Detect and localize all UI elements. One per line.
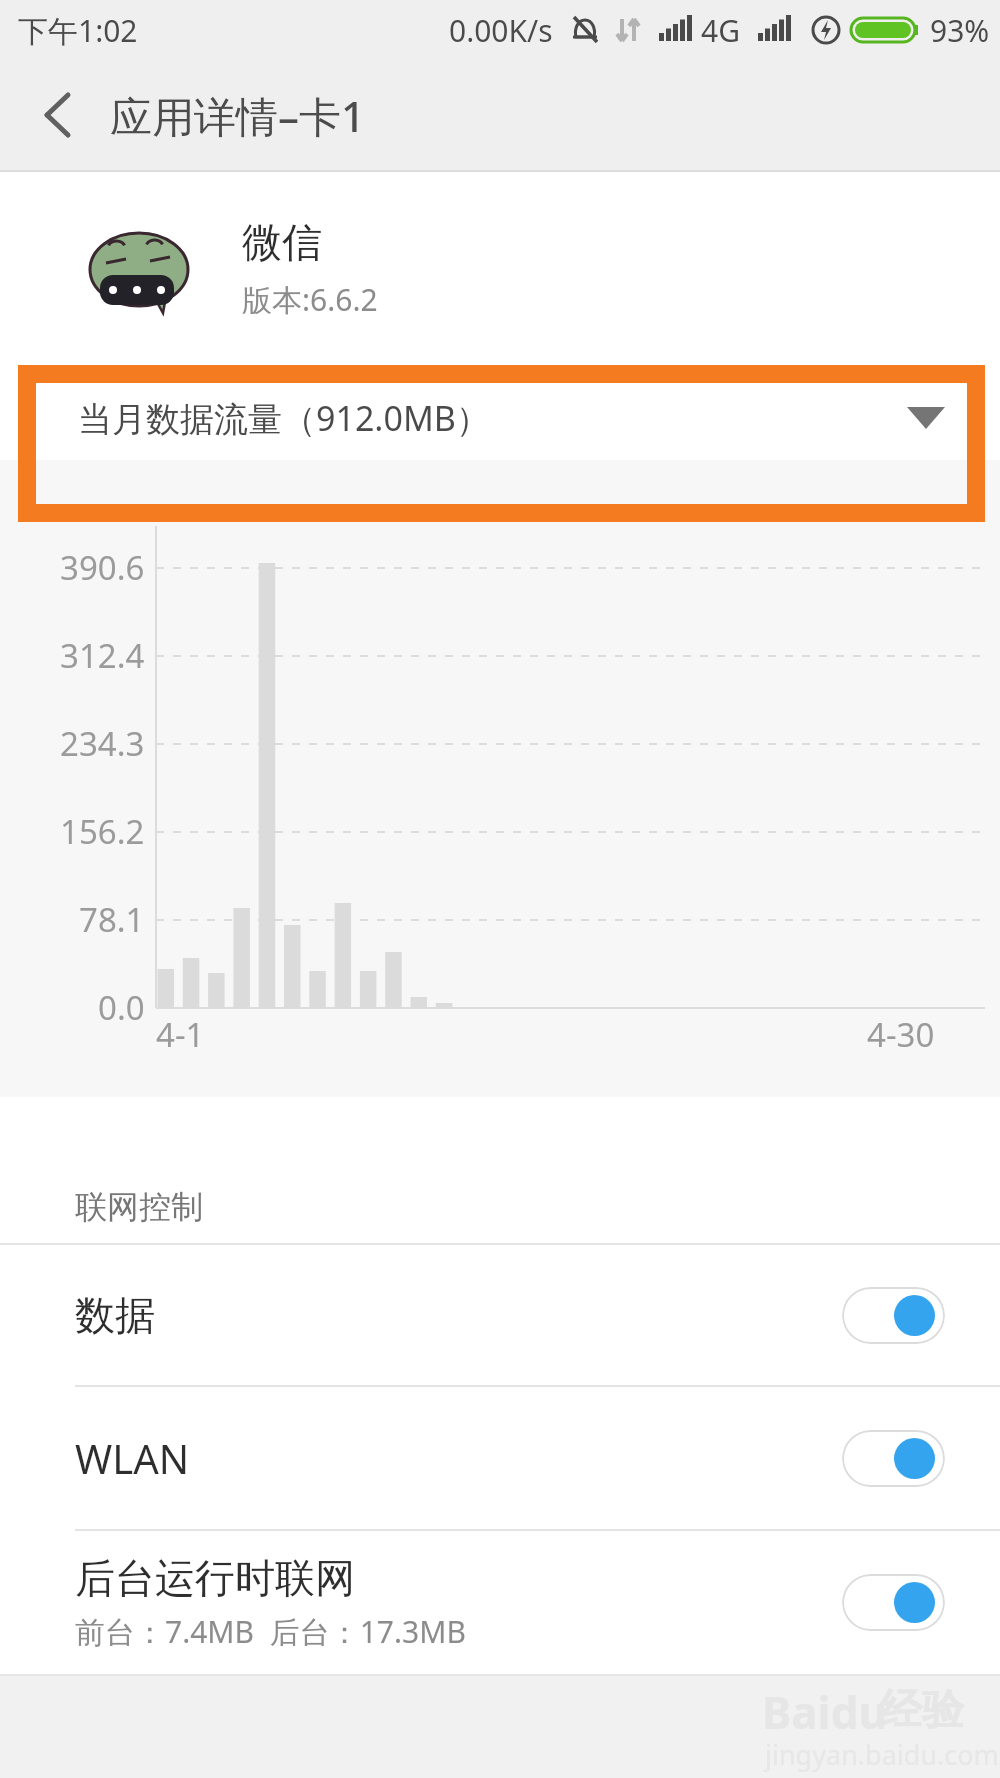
button[interactable] bbox=[44, 75, 104, 155]
staticText: 156.2 bbox=[60, 809, 145, 854]
staticText: 78.1 bbox=[79, 897, 145, 942]
staticText: 234.3 bbox=[60, 721, 145, 766]
button[interactable]: 当月数据流量（912.0MB） bbox=[0, 365, 1000, 460]
staticText: 后台运行时联网 bbox=[75, 1553, 355, 1603]
button[interactable] bbox=[842, 1430, 945, 1487]
staticText: 下午1:02 bbox=[18, 10, 138, 51]
staticText: 312.4 bbox=[60, 633, 145, 678]
staticText: 版本:6.6.2 bbox=[242, 279, 378, 320]
button[interactable] bbox=[842, 1287, 945, 1344]
staticText: 联网控制 bbox=[75, 1187, 203, 1227]
staticText: 4-30 bbox=[867, 1012, 935, 1057]
staticText: 应用详情–卡1 bbox=[110, 87, 366, 144]
staticText: 当月数据流量（912.0MB） bbox=[78, 395, 490, 441]
staticText: 93% bbox=[930, 10, 990, 51]
staticText: 数据 bbox=[75, 1290, 155, 1340]
staticText: 0.0 bbox=[98, 985, 145, 1030]
button[interactable]: 数据 bbox=[0, 1245, 1000, 1385]
staticText: 4G bbox=[701, 10, 740, 51]
staticText: 前台：7.4MB 后台：17.3MB bbox=[75, 1611, 466, 1652]
staticText: Baidu bbox=[762, 1682, 888, 1742]
staticText: jingyan.baidu.com bbox=[765, 1736, 999, 1773]
button[interactable] bbox=[842, 1574, 945, 1631]
staticText: 390.6 bbox=[60, 545, 145, 590]
staticText: 经验 bbox=[880, 1684, 964, 1737]
staticText: WLAN bbox=[75, 1431, 190, 1485]
button[interactable]: WLAN bbox=[0, 1387, 1000, 1529]
staticText: 0.00K/s bbox=[449, 10, 553, 51]
staticText: 4-1 bbox=[156, 1012, 205, 1057]
staticText: 微信 bbox=[242, 217, 322, 267]
button[interactable]: 后台运行时联网 bbox=[0, 1531, 1000, 1674]
